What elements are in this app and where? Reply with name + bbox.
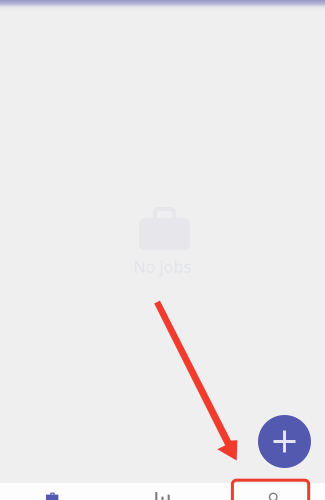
button[interactable]: Jobs bbox=[0, 492, 108, 500]
staticText: No jobs bbox=[133, 256, 191, 277]
button[interactable]: Profile bbox=[217, 492, 325, 500]
button[interactable]: Stats bbox=[108, 492, 217, 500]
button[interactable]: Add bbox=[258, 415, 311, 468]
